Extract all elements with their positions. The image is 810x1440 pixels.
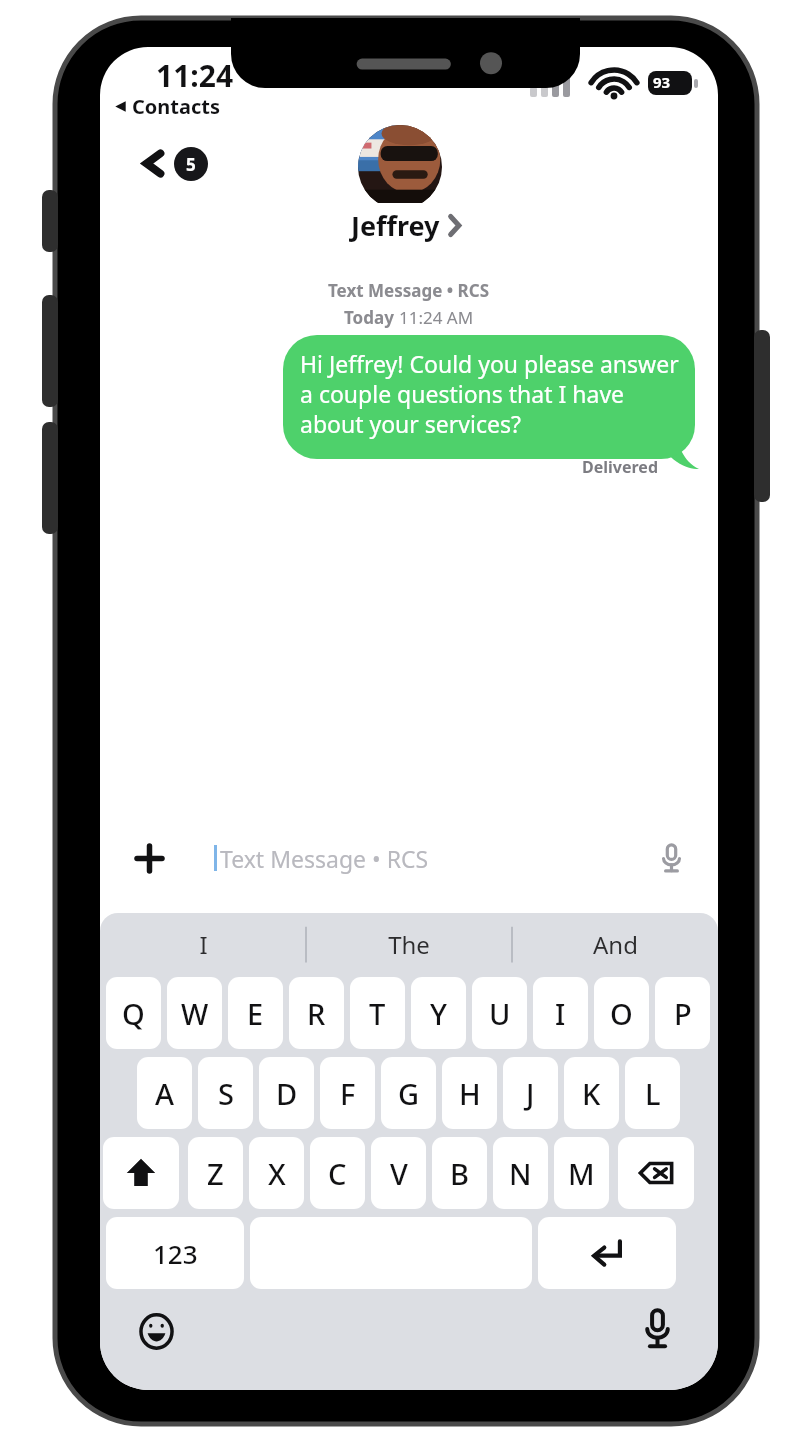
staticText: Q: [122, 994, 145, 1033]
button[interactable]: N: [493, 1137, 548, 1209]
staticText: Y: [430, 994, 447, 1033]
staticText: C: [328, 1154, 347, 1193]
staticText: K: [582, 1074, 601, 1113]
button[interactable]: F: [320, 1057, 375, 1129]
staticText: J: [526, 1074, 535, 1113]
button[interactable]: Return: [538, 1217, 676, 1289]
button[interactable]: J: [503, 1057, 558, 1129]
button[interactable]: Dictation: [632, 1304, 682, 1354]
staticText: A: [155, 1074, 174, 1113]
staticText: Jeffrey: [351, 207, 440, 244]
staticText: G: [398, 1074, 420, 1113]
button[interactable]: H: [442, 1057, 497, 1129]
button[interactable]: R: [289, 977, 344, 1049]
button[interactable]: U: [472, 977, 527, 1049]
button[interactable]: C: [310, 1137, 365, 1209]
button[interactable]: Jeffrey: [333, 203, 478, 248]
staticText: And: [593, 928, 638, 961]
staticText: H: [459, 1074, 481, 1113]
button[interactable]: And: [512, 913, 718, 975]
staticText: B: [450, 1154, 469, 1193]
staticText: 11:24 AM: [399, 306, 474, 329]
button[interactable]: D: [259, 1057, 314, 1129]
button[interactable]: I: [100, 913, 306, 975]
button[interactable]: Shift: [103, 1137, 179, 1209]
button[interactable]: W: [167, 977, 222, 1049]
button[interactable]: Y: [411, 977, 466, 1049]
staticText: L: [645, 1074, 661, 1113]
button[interactable]: M: [554, 1137, 609, 1209]
staticText: O: [610, 994, 633, 1033]
button[interactable]: Q: [106, 977, 161, 1049]
button[interactable]: Contacts: [108, 91, 227, 122]
button[interactable]: A: [137, 1057, 192, 1129]
staticText: P: [674, 994, 692, 1033]
button[interactable]: Add attachment: [118, 827, 180, 889]
button[interactable]: Jeffrey profile photo: [358, 125, 442, 209]
staticText: Z: [207, 1154, 224, 1193]
staticText: M: [568, 1154, 595, 1193]
button[interactable]: X: [249, 1137, 304, 1209]
button[interactable]: Backspace: [618, 1137, 694, 1209]
staticText: N: [509, 1154, 532, 1193]
button[interactable]: Text Message • RCS: [194, 828, 700, 888]
staticText: R: [307, 994, 326, 1033]
staticText: E: [247, 994, 264, 1033]
button[interactable]: P: [655, 977, 710, 1049]
button[interactable]: T: [350, 977, 405, 1049]
button[interactable]: S: [198, 1057, 253, 1129]
staticText: 93: [653, 72, 671, 92]
button[interactable]: L: [625, 1057, 680, 1129]
staticText: Text Message • RCS: [220, 843, 429, 874]
button[interactable]: O: [594, 977, 649, 1049]
staticText: Delivered: [582, 456, 659, 478]
staticText: Today: [344, 306, 399, 329]
button[interactable]: G: [381, 1057, 436, 1129]
staticText: The: [388, 928, 430, 961]
button[interactable]: K: [564, 1057, 619, 1129]
button[interactable]: I: [533, 977, 588, 1049]
staticText: 5: [186, 153, 196, 176]
button[interactable]: E: [228, 977, 283, 1049]
staticText: Hi Jeffrey! Could you please answer a co…: [300, 348, 682, 439]
staticText: 123: [153, 1236, 198, 1271]
button[interactable]: V: [371, 1137, 426, 1209]
button[interactable]: Back, 5 unread: [123, 135, 227, 192]
button[interactable]: B: [432, 1137, 487, 1209]
staticText: 11:24: [156, 55, 234, 96]
button[interactable]: Z: [188, 1137, 243, 1209]
staticText: I: [555, 994, 566, 1033]
staticText: U: [489, 994, 511, 1033]
staticText: W: [181, 994, 209, 1033]
button[interactable]: Emoji: [132, 1307, 180, 1355]
button[interactable]: 123: [106, 1217, 244, 1289]
staticText: V: [390, 1154, 408, 1193]
staticText: F: [340, 1074, 356, 1113]
staticText: X: [268, 1154, 286, 1193]
staticText: D: [276, 1074, 298, 1113]
staticText: Contacts: [132, 93, 221, 120]
button[interactable]: The: [306, 913, 512, 975]
staticText: S: [218, 1074, 234, 1113]
staticText: Text Message • RCS: [328, 279, 490, 302]
staticText: I: [199, 928, 208, 961]
staticText: T: [369, 994, 386, 1033]
